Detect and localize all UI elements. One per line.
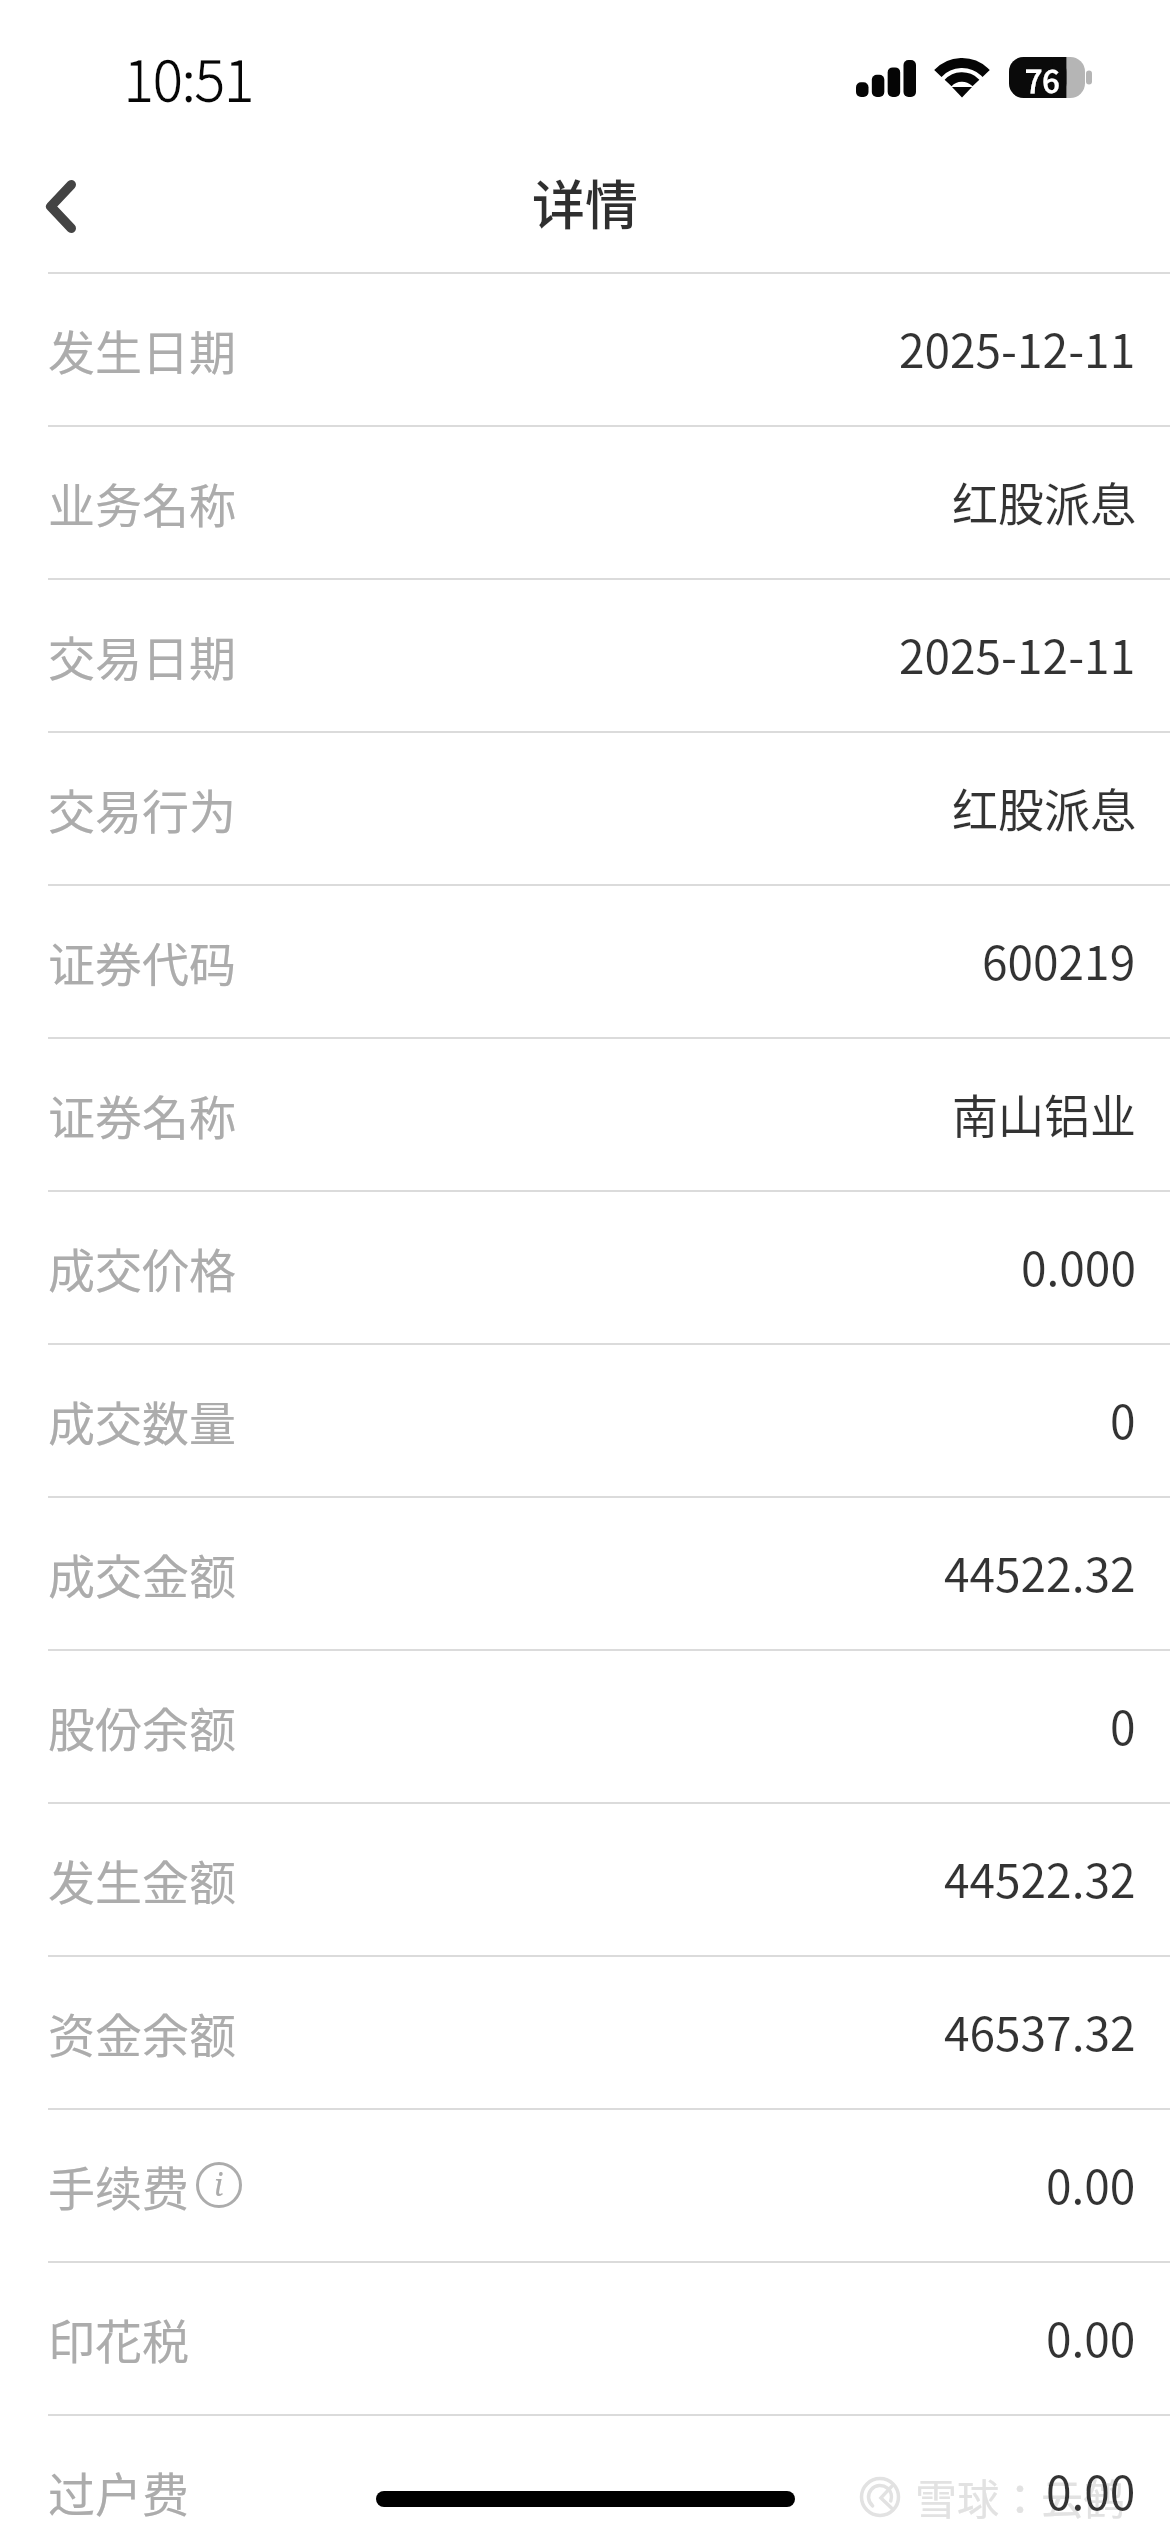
staticText: 76: [1025, 57, 1060, 98]
staticText: 雪球：云鹤: [915, 2466, 1126, 2527]
staticText: 交易日期: [48, 621, 236, 689]
staticText: 印花税: [48, 2304, 189, 2372]
staticText: 0.00: [1046, 2151, 1136, 2218]
staticText: 0: [1110, 1692, 1136, 1759]
staticText: 600219: [982, 927, 1136, 994]
staticText: 46537.32: [944, 1998, 1136, 2065]
button[interactable]: Fee info: [196, 2162, 242, 2208]
button[interactable]: 发生金额: [0, 1802, 1170, 1955]
staticText: 业务名称: [48, 468, 236, 536]
button[interactable]: 手续费: [0, 2108, 1170, 2261]
button[interactable]: 证券代码: [0, 884, 1170, 1037]
button[interactable]: 交易行为: [0, 731, 1170, 884]
staticText: 44522.32: [944, 1845, 1136, 1912]
staticText: 证券名称: [48, 1080, 236, 1148]
staticText: 成交金额: [48, 1539, 236, 1607]
button[interactable]: Back: [16, 161, 106, 251]
staticText: 44522.32: [944, 1539, 1136, 1606]
staticText: 手续费: [48, 2151, 189, 2219]
staticText: 0: [1110, 1386, 1136, 1453]
staticText: 交易行为: [48, 774, 236, 842]
button[interactable]: 股份余额: [0, 1649, 1170, 1802]
staticText: 发生日期: [48, 315, 236, 383]
staticText: 股份余额: [48, 1692, 236, 1760]
staticText: 发生金额: [48, 1845, 236, 1913]
staticText: 成交价格: [48, 1233, 236, 1301]
staticText: 南山铝业: [952, 1080, 1136, 1147]
staticText: 0.000: [1021, 1233, 1136, 1300]
staticText: 详情: [532, 164, 638, 241]
staticText: 2025-12-11: [899, 315, 1136, 382]
staticText: 红股派息: [952, 468, 1136, 535]
staticText: 2025-12-11: [899, 621, 1136, 688]
button[interactable]: 发生日期: [0, 272, 1170, 425]
button[interactable]: 业务名称: [0, 425, 1170, 578]
button[interactable]: 成交价格: [0, 1190, 1170, 1343]
button[interactable]: 交易日期: [0, 578, 1170, 731]
staticText: 证券代码: [48, 927, 236, 995]
staticText: 过户费: [48, 2457, 189, 2525]
staticText: 资金余额: [48, 1998, 236, 2066]
staticText: 0.00: [1046, 2304, 1136, 2371]
button[interactable]: 成交数量: [0, 1343, 1170, 1496]
button[interactable]: 资金余额: [0, 1955, 1170, 2108]
button[interactable]: 印花税: [0, 2261, 1170, 2414]
staticText: i: [214, 2164, 224, 2205]
button[interactable]: 过户费: [0, 2414, 1170, 2532]
staticText: 0.00: [1046, 2457, 1136, 2524]
staticText: 成交数量: [48, 1386, 236, 1454]
button[interactable]: 证券名称: [0, 1037, 1170, 1190]
staticText: 10:51: [124, 36, 254, 117]
staticText: 红股派息: [952, 774, 1136, 841]
button[interactable]: 成交金额: [0, 1496, 1170, 1649]
